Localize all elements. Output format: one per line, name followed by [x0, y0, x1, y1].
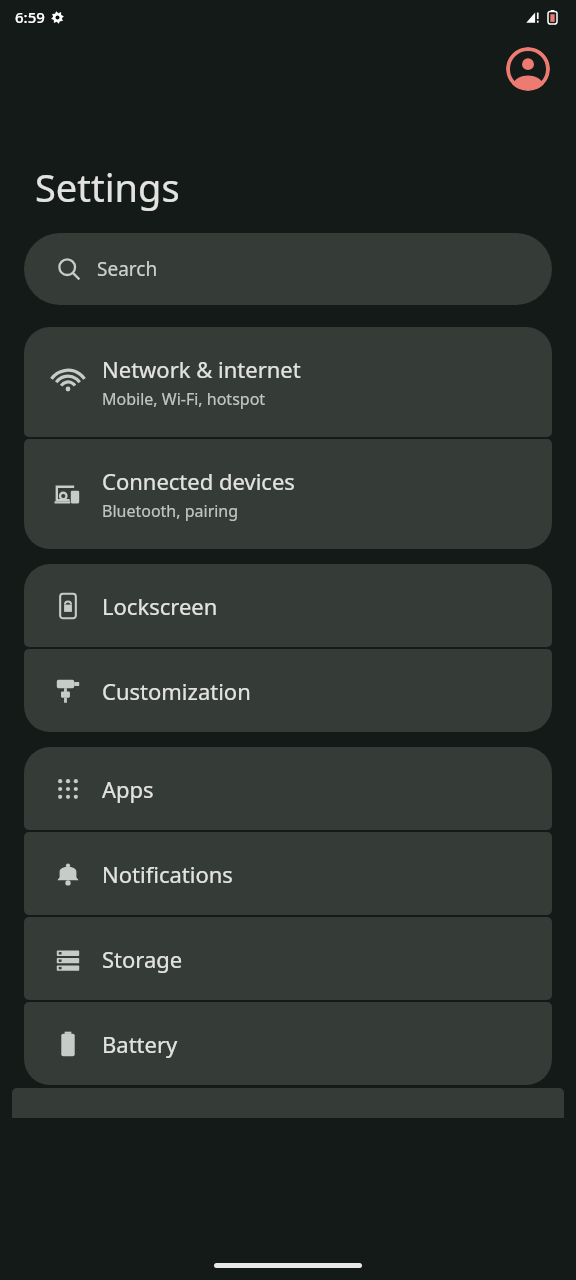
staticText: Network & internet: [102, 354, 301, 384]
staticText: Battery: [102, 1029, 178, 1059]
button[interactable]: Apps: [24, 747, 552, 830]
button[interactable]: Network & internet: [24, 327, 552, 437]
button[interactable]: Account: [506, 47, 550, 91]
staticText: Settings: [35, 161, 180, 213]
button[interactable]: Customization: [24, 649, 552, 732]
staticText: Storage: [102, 944, 183, 974]
staticText: 6:59: [15, 7, 45, 27]
button[interactable]: Connected devices: [24, 439, 552, 549]
button[interactable]: Notifications: [24, 832, 552, 915]
staticText: Mobile, Wi-Fi, hotspot: [102, 388, 266, 410]
staticText: Notifications: [102, 859, 233, 889]
button[interactable]: Storage: [24, 917, 552, 1000]
button[interactable]: Search: [24, 233, 552, 305]
staticText: Apps: [102, 774, 154, 804]
staticText: Lockscreen: [102, 591, 218, 621]
staticText: Connected devices: [102, 466, 295, 496]
staticText: Bluetooth, pairing: [102, 500, 239, 522]
button[interactable]: Battery: [24, 1002, 552, 1085]
staticText: Customization: [102, 676, 251, 706]
button[interactable]: Lockscreen: [24, 564, 552, 647]
staticText: Search: [97, 256, 158, 282]
